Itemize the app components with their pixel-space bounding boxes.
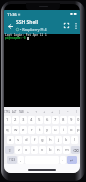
button[interactable]: 5 [36, 116, 43, 124]
staticText: y [46, 127, 49, 133]
staticText: 6 [46, 117, 49, 123]
staticText: s [17, 137, 20, 143]
staticText: SSH Shell [16, 19, 38, 26]
button[interactable]: r [28, 126, 35, 134]
button[interactable]: 7 [52, 116, 59, 124]
button[interactable]: ↵ [67, 156, 77, 164]
staticText: ↓ [43, 111, 46, 114]
button[interactable]: / [72, 108, 80, 116]
button[interactable]: k [63, 136, 70, 144]
staticText: 9 [70, 117, 73, 123]
button[interactable]: ⌫ [71, 146, 80, 154]
button[interactable]: 9 [68, 116, 75, 124]
staticText: 11:36 [7, 12, 17, 17]
staticText: Last login: Fri Apr 11 1 [5, 33, 47, 37]
button[interactable]: d [23, 136, 30, 144]
staticText: ALT [12, 110, 17, 114]
staticText: ↵ [70, 158, 74, 163]
staticText: a [9, 137, 12, 143]
staticText: l [74, 137, 76, 143]
staticText: pi@raspbe:~$ [5, 36, 26, 40]
staticText: w [14, 127, 18, 133]
staticText: , [20, 157, 22, 163]
staticText: 3 [22, 117, 25, 123]
button[interactable]: t [36, 126, 43, 134]
staticText: 5 [38, 117, 41, 123]
staticText: e [22, 127, 25, 133]
staticText: 1 [6, 117, 9, 123]
staticText: n [57, 147, 60, 153]
button[interactable]: m [63, 146, 70, 154]
button[interactable]: y [44, 126, 51, 134]
staticText: q [6, 127, 9, 133]
staticText: r [31, 127, 33, 133]
staticText: h [49, 137, 52, 143]
staticText: g [41, 137, 44, 143]
button[interactable]: o [68, 126, 75, 134]
staticText: ⌫ [73, 148, 79, 153]
button[interactable]: 2 [12, 116, 19, 124]
button[interactable]: ~ [64, 108, 72, 116]
button[interactable]: ⇧ [5, 146, 14, 154]
button[interactable]: → [48, 108, 56, 116]
button[interactable]: Fullscreen [61, 20, 72, 31]
button[interactable]: b [47, 146, 54, 154]
button[interactable]: a [7, 136, 14, 144]
staticText: k [65, 137, 68, 143]
button[interactable]: ALT [11, 108, 18, 116]
staticText: o [70, 127, 73, 133]
button[interactable]: e [20, 126, 27, 134]
button[interactable]: f [31, 136, 38, 144]
button[interactable]: h [47, 136, 54, 144]
staticText: ← [27, 111, 30, 114]
staticText: | [59, 110, 61, 114]
button[interactable]: g [39, 136, 46, 144]
button[interactable]: i [60, 126, 67, 134]
staticText: z [18, 147, 20, 153]
button[interactable]: ← [25, 108, 32, 116]
button[interactable]: 4 [28, 116, 35, 124]
staticText: p [77, 127, 80, 133]
staticText: 7 [54, 117, 57, 123]
button[interactable]: . [60, 156, 66, 164]
staticText: TAB [19, 110, 24, 114]
button[interactable]: TAB [18, 108, 25, 116]
staticText: ⇧ [8, 148, 12, 153]
button[interactable]: 0 [76, 116, 80, 124]
staticText: → [51, 111, 54, 114]
button[interactable]: 3 [20, 116, 27, 124]
button[interactable]: 6 [44, 116, 51, 124]
button[interactable]: CTRL [4, 108, 11, 116]
button[interactable]: s [15, 136, 22, 144]
staticText: i [63, 127, 65, 133]
staticText: ~ [67, 110, 69, 114]
button[interactable]: u [52, 126, 59, 134]
button[interactable]: q [4, 126, 11, 134]
button[interactable]: v [39, 146, 46, 154]
staticText: CTRL [4, 110, 11, 114]
staticText: 8 [62, 117, 65, 123]
staticText: ↑ [35, 111, 38, 114]
button[interactable]: x [23, 146, 30, 154]
button[interactable]: ↑ [32, 108, 40, 116]
button[interactable]: ?123 [7, 156, 17, 164]
button[interactable]: , [18, 156, 24, 164]
button[interactable]: p [76, 126, 80, 134]
staticText: t [39, 127, 41, 133]
button[interactable]: | [56, 108, 64, 116]
button[interactable]: More options [72, 22, 80, 30]
button[interactable]: n [55, 146, 62, 154]
button[interactable]: z [15, 146, 22, 154]
button[interactable]: c [31, 146, 38, 154]
button[interactable]: l [71, 136, 78, 144]
button[interactable]: 8 [60, 116, 67, 124]
staticText: 2 [14, 117, 17, 123]
button[interactable]: Back [4, 20, 16, 32]
button[interactable]: ↓ [40, 108, 48, 116]
button[interactable]: 1 [4, 116, 11, 124]
staticText: m [65, 147, 69, 153]
staticText: 4 [30, 117, 33, 123]
button[interactable]: w [12, 126, 19, 134]
button[interactable]: j [55, 136, 62, 144]
